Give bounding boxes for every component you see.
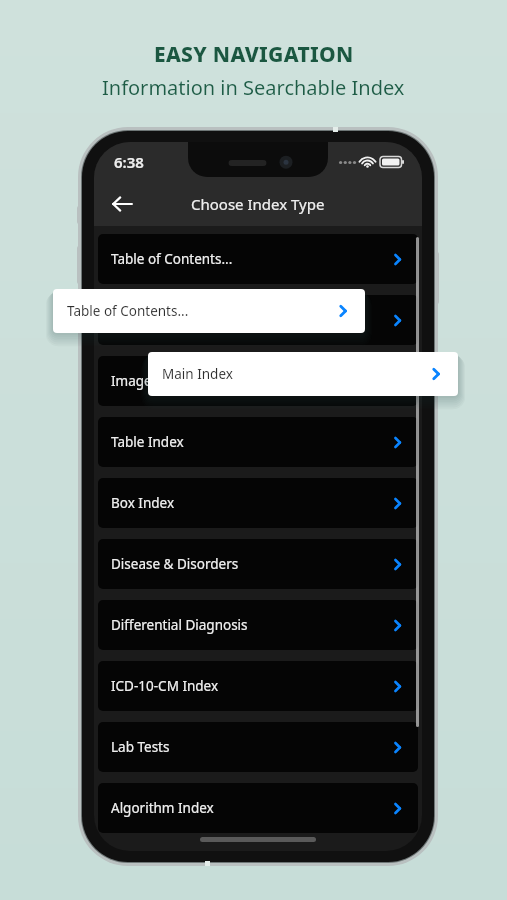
button[interactable]: Table of Contents... (53, 289, 365, 333)
button[interactable]: Table Index (98, 417, 418, 467)
staticText: Table Index (111, 433, 184, 451)
staticText: Disease & Disorders (111, 555, 239, 573)
button[interactable]: Table of Contents... (98, 234, 418, 284)
button[interactable]: Disease & Disorders (98, 539, 418, 589)
staticText: Choose Index Type (191, 194, 325, 214)
button[interactable]: Image Index (98, 356, 418, 406)
staticText: Image Index (111, 372, 191, 390)
staticText: Main Index (162, 365, 233, 383)
staticText: Algorithm Index (111, 799, 214, 817)
staticText: 6:38 (114, 152, 144, 172)
button[interactable]: Lab Tests (98, 722, 418, 772)
button[interactable]: Box Index (98, 478, 418, 528)
button[interactable] (98, 295, 418, 345)
staticText: Information in Searchable Index (102, 74, 405, 101)
staticText: Table of Contents... (111, 250, 233, 268)
staticText: ICD-10-CM Index (111, 677, 219, 695)
staticText: Box Index (111, 494, 175, 512)
button[interactable]: ICD-10-CM Index (98, 661, 418, 711)
button[interactable]: Back (102, 184, 142, 224)
staticText: Table of Contents... (67, 302, 189, 320)
button[interactable]: Differential Diagnosis (98, 600, 418, 650)
staticText: Lab Tests (111, 738, 170, 756)
button[interactable]: Main Index (148, 352, 458, 396)
button[interactable]: Algorithm Index (98, 783, 418, 833)
staticText: EASY NAVIGATION (154, 40, 354, 69)
staticText: Differential Diagnosis (111, 616, 248, 634)
